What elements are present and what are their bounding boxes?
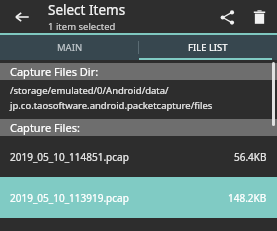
staticText: 2019_05_10_113919.pcap — [10, 191, 129, 205]
staticText: 2019_05_10_114851.pcap — [10, 150, 129, 164]
staticText: Capture Files: — [10, 120, 80, 135]
button[interactable]: Back — [8, 3, 36, 31]
button[interactable]: 2019_05_10_114851.pcap — [0, 136, 277, 177]
staticText: Select Items — [48, 1, 126, 19]
button[interactable]: Delete — [245, 3, 273, 31]
button[interactable]: 2019_05_10_113919.pcap — [0, 177, 277, 218]
staticText: 148.2KB — [228, 191, 267, 205]
staticText: 1 item selected — [48, 20, 116, 33]
staticText: Capture Files Dir: — [10, 64, 99, 79]
button[interactable]: MAIN — [0, 35, 139, 60]
staticText: FILE LIST — [188, 41, 228, 54]
button[interactable]: FILE LIST — [139, 35, 277, 60]
staticText: jp.co.taosoftware.android.packetcapture/… — [10, 99, 213, 112]
staticText: MAIN — [57, 41, 83, 54]
button[interactable]: Share — [213, 3, 241, 31]
staticText: /storage/emulated/0/Android/data/ — [10, 84, 169, 97]
staticText: 56.4KB — [234, 150, 267, 164]
